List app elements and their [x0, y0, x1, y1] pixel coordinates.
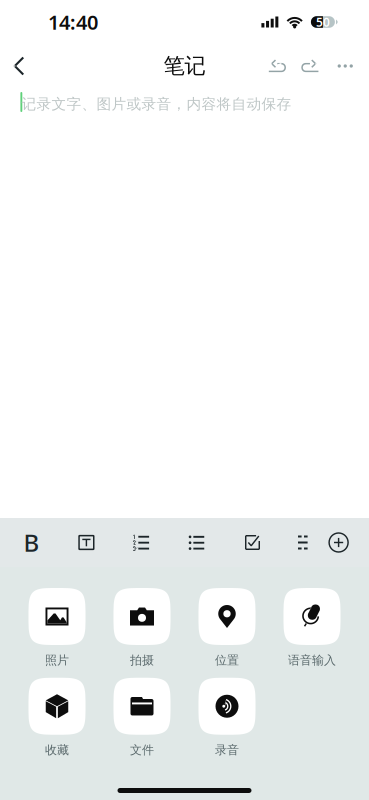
staticText: 记录文字、图片或录音，内容将自动保存 [21, 95, 291, 113]
button[interactable]: Text style [63, 518, 110, 567]
staticText: 语音输入 [288, 653, 336, 668]
staticText: 位置 [215, 653, 239, 668]
button[interactable]: More options [327, 44, 363, 88]
button[interactable]: Bulleted list [172, 518, 221, 567]
button[interactable]: 文件 [104, 678, 180, 757]
staticText: 收藏 [45, 743, 69, 757]
button[interactable]: Back [0, 44, 37, 88]
button[interactable]: Insert [321, 518, 356, 567]
button[interactable]: 照片 [19, 588, 95, 668]
button[interactable]: 位置 [189, 588, 265, 668]
button[interactable]: Redo [293, 44, 327, 88]
button[interactable]: 语音输入 [274, 588, 350, 668]
button[interactable]: Line spacing [284, 518, 321, 567]
staticText: 拍摄 [130, 653, 154, 668]
staticText: B [24, 527, 40, 558]
button[interactable]: 拍摄 [104, 588, 180, 668]
button[interactable]: 录音 [189, 678, 265, 757]
button[interactable]: 收藏 [19, 678, 95, 757]
button[interactable]: Bold [0, 518, 63, 567]
button[interactable]: Numbered list [110, 518, 172, 567]
button[interactable]: Checklist [221, 518, 284, 567]
staticText: 笔记 [163, 53, 205, 79]
staticText: 录音 [215, 743, 239, 757]
staticText: 文件 [130, 743, 154, 757]
staticText: 14:40 [48, 9, 98, 35]
button[interactable]: Undo [260, 44, 293, 88]
staticText: 照片 [45, 653, 69, 668]
staticText: 50 [316, 14, 330, 30]
